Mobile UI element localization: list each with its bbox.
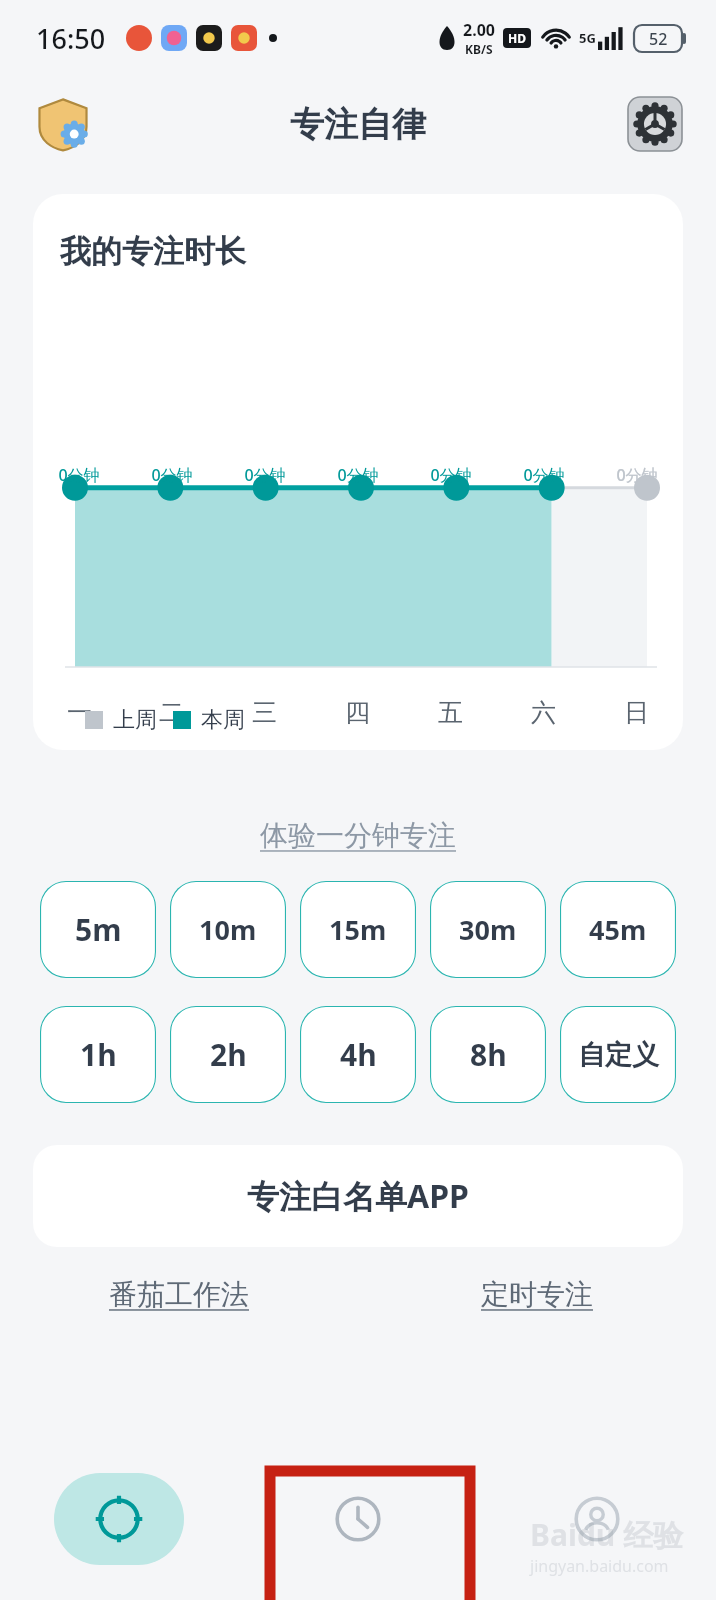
staticText: 二 [159, 697, 184, 728]
staticText: 2h [210, 1034, 247, 1075]
button[interactable]: 1h [40, 1006, 156, 1103]
staticText: jingyan.baidu.com [530, 1555, 669, 1577]
staticText: 0分钟 [523, 464, 565, 486]
staticText: 上周 [113, 706, 157, 734]
staticText: 2.00 [463, 19, 495, 41]
button[interactable]: 10m [170, 881, 286, 978]
button[interactable]: 30m [430, 881, 546, 978]
staticText: 4h [340, 1034, 377, 1075]
button[interactable]: 8h [430, 1006, 546, 1103]
staticText: 专注自律 [290, 103, 426, 146]
staticText: 一 [67, 697, 92, 728]
staticText: 日 [624, 697, 649, 728]
button[interactable]: Shield settings [32, 93, 94, 155]
staticText: 0分钟 [58, 464, 100, 486]
staticText: 52 [649, 28, 668, 50]
button[interactable]: Settings [626, 95, 684, 153]
staticText: 16:50 [36, 20, 106, 57]
button[interactable]: Profile [532, 1473, 662, 1565]
staticText: 三 [252, 697, 277, 728]
staticText: HD [508, 30, 526, 46]
staticText: KB/S [465, 41, 493, 57]
staticText: 专注白名单APP [247, 1174, 469, 1218]
staticText: 45m [589, 911, 647, 948]
staticText: 0分钟 [430, 464, 472, 486]
button[interactable]: Focus [54, 1473, 184, 1565]
staticText: 我的专注时长 [60, 232, 246, 271]
staticText: 0分钟 [151, 464, 193, 486]
button[interactable]: 5m [40, 881, 156, 978]
button[interactable]: 4h [300, 1006, 416, 1103]
staticText: 5m [75, 909, 122, 950]
staticText: 30m [459, 911, 517, 948]
button[interactable]: 番茄工作法 [101, 1269, 257, 1320]
staticText: 四 [345, 697, 370, 728]
staticText: 五 [438, 697, 463, 728]
staticText: 8h [470, 1034, 507, 1075]
staticText: 六 [531, 697, 556, 728]
button[interactable]: 专注白名单APP [33, 1145, 683, 1247]
button[interactable]: 我的专注时长 [33, 194, 683, 750]
button[interactable]: 定时专注 [473, 1269, 601, 1320]
staticText: 1h [80, 1034, 117, 1075]
button[interactable]: 2h [170, 1006, 286, 1103]
staticText: 自定义 [578, 1038, 659, 1072]
button[interactable]: 自定义 [560, 1006, 676, 1103]
staticText: 15m [329, 911, 387, 948]
staticText: 0分钟 [616, 464, 658, 486]
staticText: 5G [579, 29, 596, 47]
button[interactable]: 体验一分钟专注 [254, 812, 462, 859]
staticText: 0分钟 [337, 464, 379, 486]
button[interactable]: 45m [560, 881, 676, 978]
button[interactable]: History [293, 1473, 423, 1565]
staticText: 10m [199, 911, 257, 948]
button[interactable]: 15m [300, 881, 416, 978]
staticText: 0分钟 [244, 464, 286, 486]
staticText: Baidu 经验 [530, 1514, 684, 1555]
staticText: 本周 [201, 706, 245, 734]
